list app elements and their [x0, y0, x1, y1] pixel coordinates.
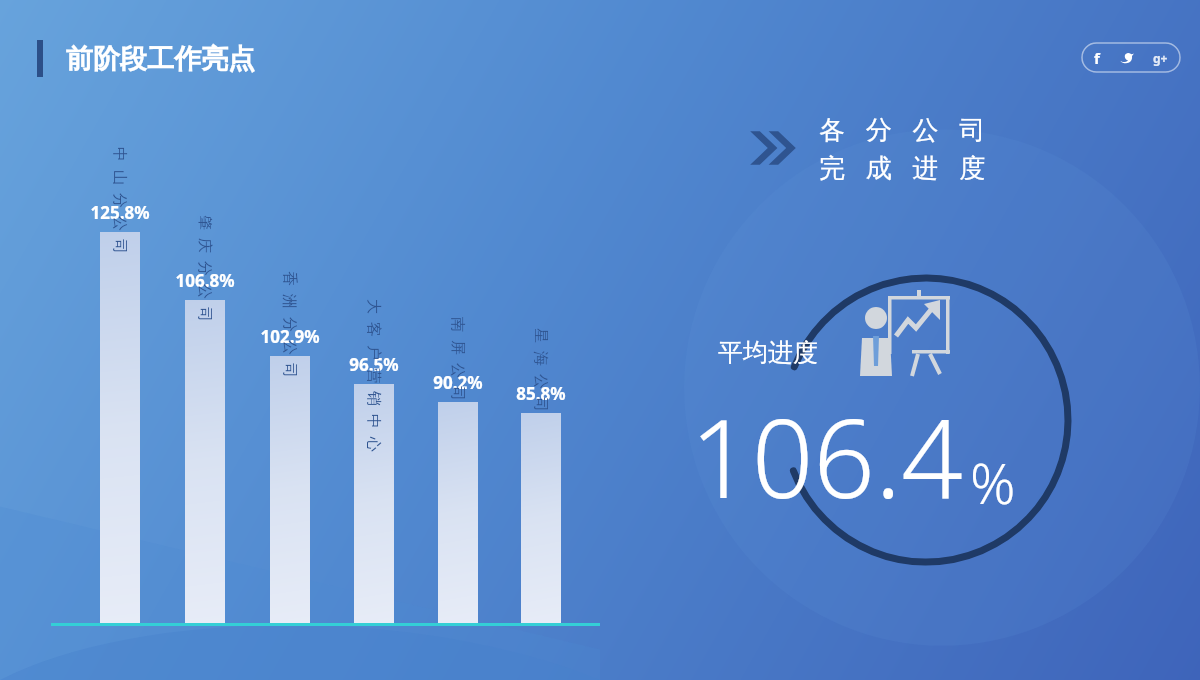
staticText: 90.2%: [408, 371, 508, 394]
staticText: 星海公司: [531, 324, 550, 416]
staticText: 106.8%: [155, 269, 255, 292]
staticText: 85.8%: [491, 382, 591, 405]
staticText: 平均进度: [718, 337, 818, 368]
staticText: 102.9%: [240, 325, 340, 348]
staticText: 96.5%: [324, 353, 424, 376]
staticText: f: [1094, 48, 1100, 68]
staticText: %: [970, 444, 1016, 520]
staticText: g+: [1153, 50, 1168, 66]
staticText: 香洲分公司: [280, 267, 299, 382]
staticText: 南屏公司: [448, 313, 467, 405]
staticText: 125.8%: [70, 201, 170, 224]
staticText: 各 分 公 司: [819, 111, 993, 147]
staticText: 大客户营销中心: [364, 295, 383, 456]
button[interactable]: Share on social media: [1082, 43, 1180, 72]
staticText: 中山分公司: [110, 143, 129, 258]
staticText: 肇庆分公司: [195, 211, 214, 326]
staticText: 完 成 进 度: [819, 149, 993, 185]
staticText: 106.4: [690, 383, 964, 530]
button[interactable]: 前阶段工作亮点: [37, 40, 255, 77]
staticText: 前阶段工作亮点: [66, 42, 255, 76]
